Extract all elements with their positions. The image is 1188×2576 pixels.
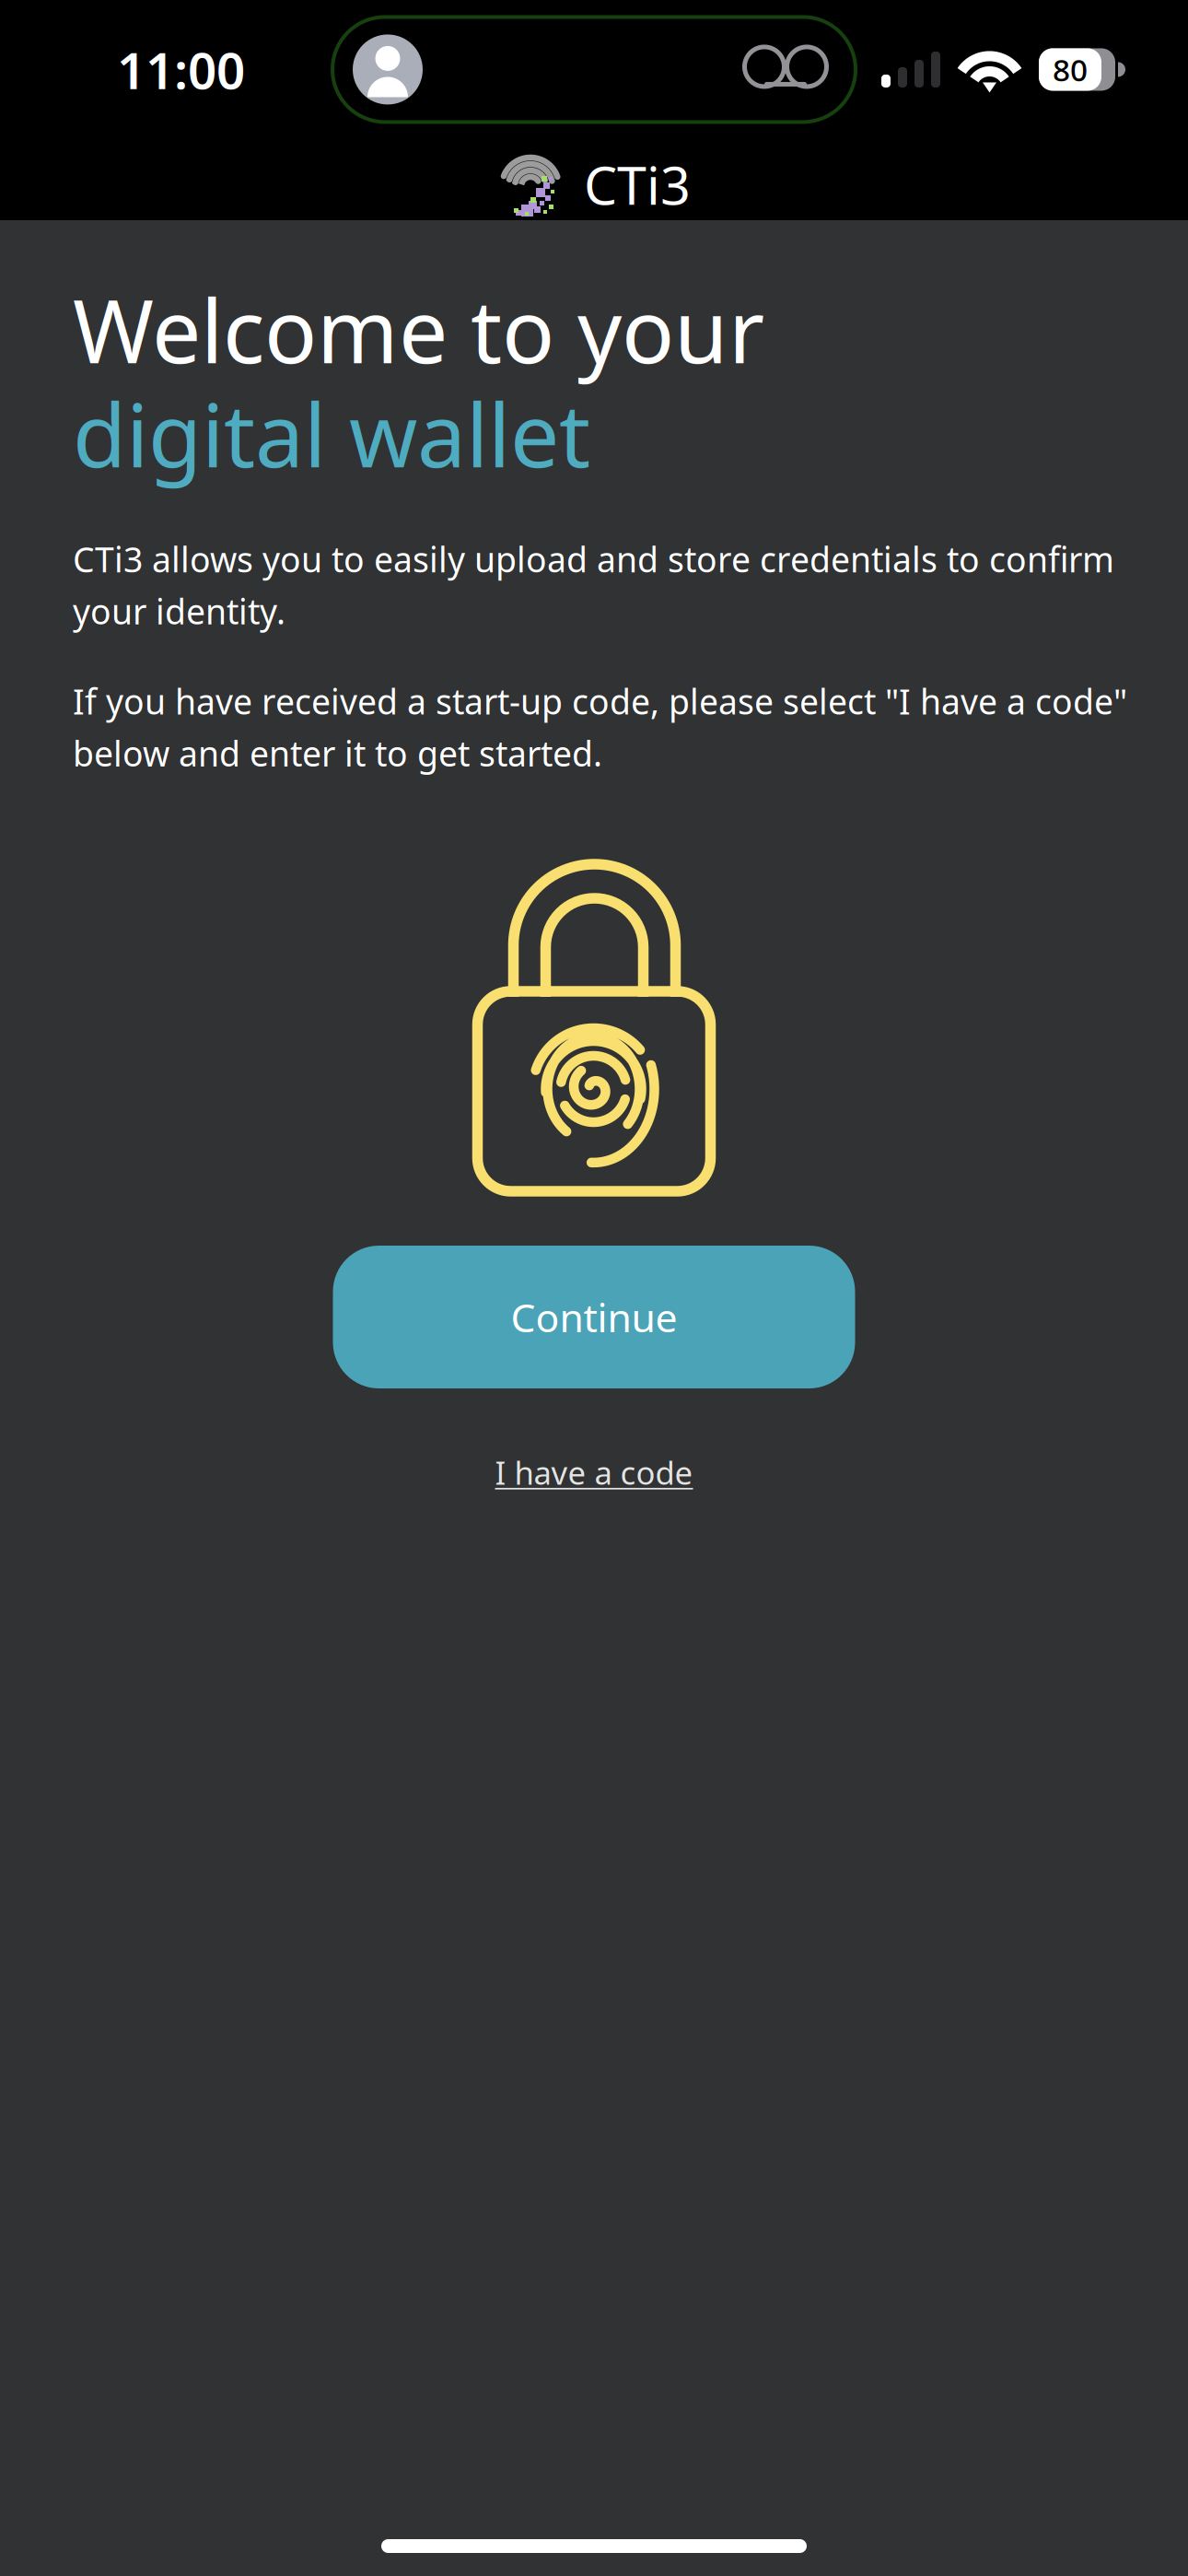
staticText: Continue bbox=[511, 1291, 677, 1343]
staticText: CTi3 allows you to easily upload and sto… bbox=[73, 536, 1114, 634]
staticText: CTi3 bbox=[584, 149, 691, 219]
staticText: I have a code bbox=[495, 1451, 693, 1493]
staticText: If you have received a start-up code, pl… bbox=[73, 678, 1127, 776]
button[interactable]: Continue bbox=[333, 1246, 855, 1388]
staticText: Welcome to your bbox=[73, 271, 764, 387]
staticText: 11:00 bbox=[117, 36, 245, 103]
staticText: digital wallet bbox=[73, 376, 590, 491]
staticText: 80 bbox=[1053, 49, 1088, 90]
button[interactable]: I have a code bbox=[495, 1451, 693, 1493]
